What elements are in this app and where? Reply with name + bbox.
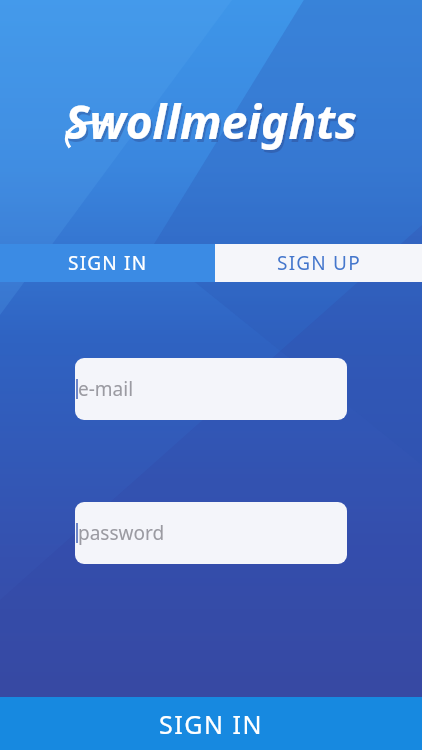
staticText: SIGN UP xyxy=(277,250,361,276)
staticText: Swollmeights xyxy=(65,90,357,153)
button[interactable]: SIGN UP xyxy=(215,244,422,282)
button[interactable]: e-mail xyxy=(75,358,347,420)
staticText: SIGN IN xyxy=(68,250,148,276)
button[interactable]: SIGN IN xyxy=(0,244,215,282)
staticText: e-mail xyxy=(78,376,134,402)
button[interactable]: password xyxy=(75,502,347,564)
staticText: Swollmeights xyxy=(67,93,359,156)
staticText: password xyxy=(78,520,165,546)
staticText: SIGN IN xyxy=(159,707,263,741)
button[interactable]: SIGN IN xyxy=(0,697,422,750)
